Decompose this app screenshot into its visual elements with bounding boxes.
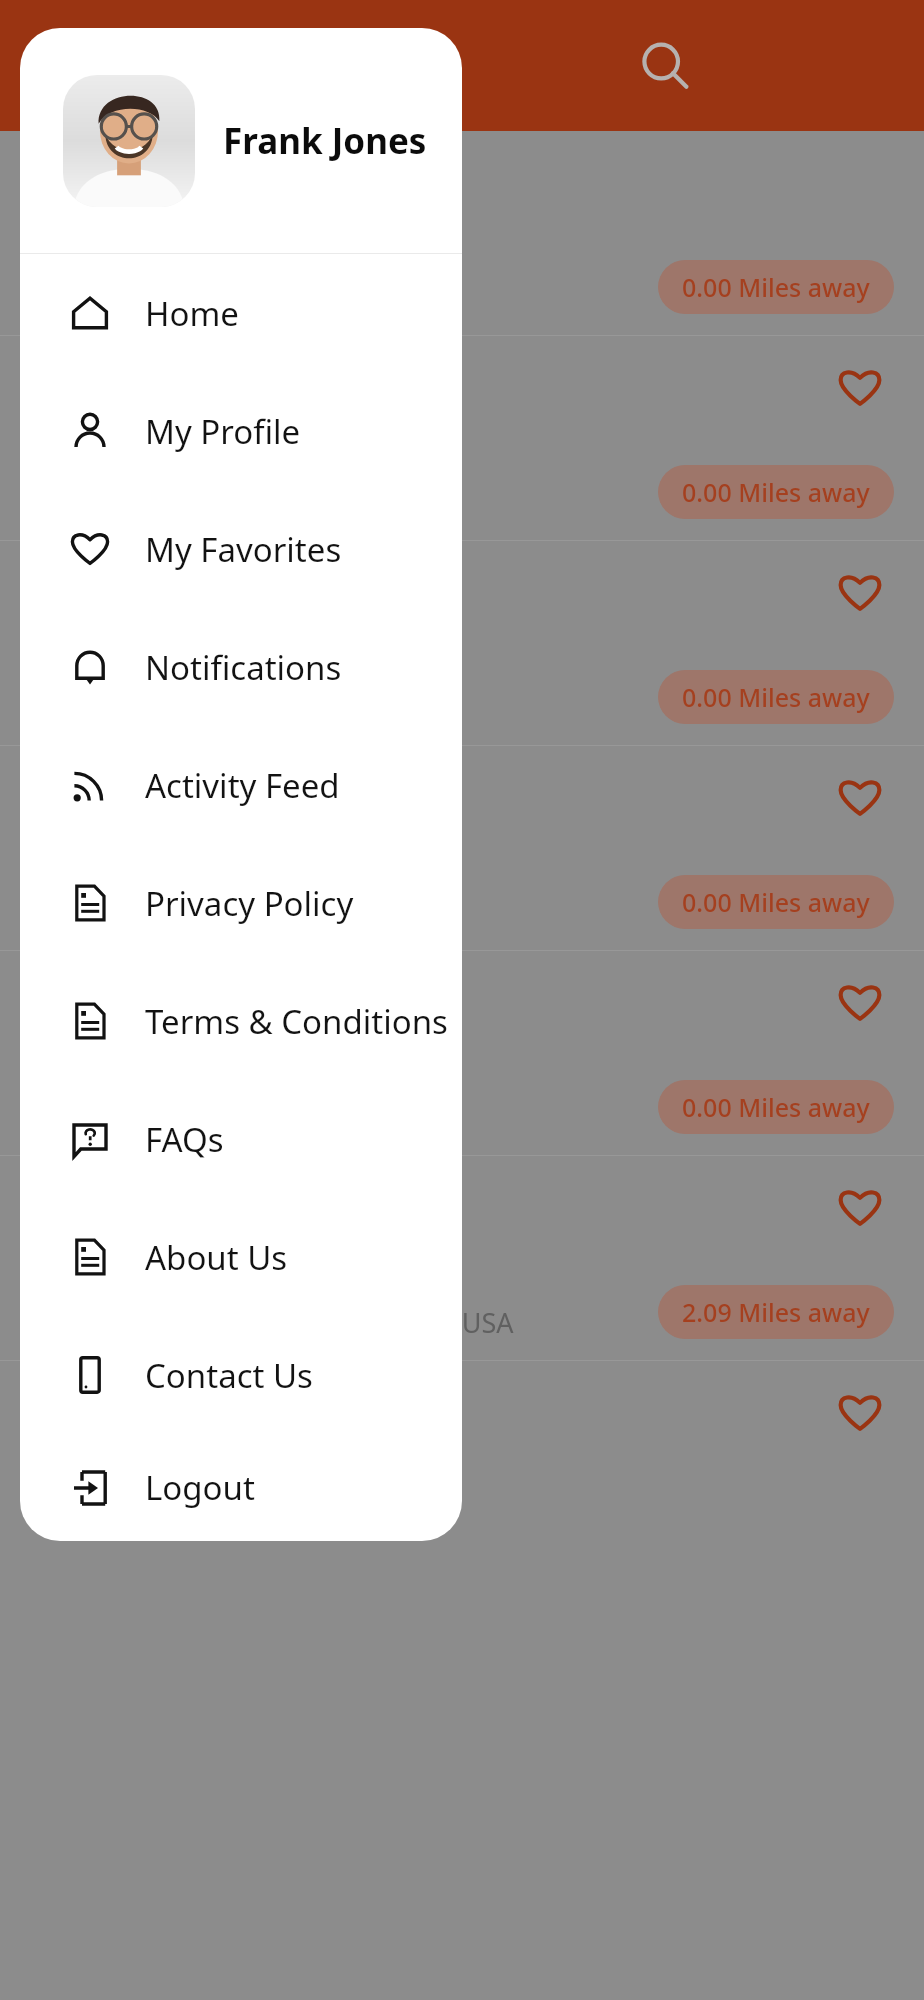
button[interactable]: Activity Feed xyxy=(20,726,462,844)
button[interactable]: Notifications xyxy=(20,608,462,726)
button[interactable]: My Favorites xyxy=(20,490,462,608)
button[interactable]: w xyxy=(0,951,924,1156)
staticText: 0.00 Miles away xyxy=(682,680,870,714)
button[interactable]: Terms & Conditions xyxy=(20,962,462,1080)
staticText: 0.00 Miles away xyxy=(682,270,870,304)
button[interactable]: Privacy Policy xyxy=(20,844,462,962)
staticText: My Profile xyxy=(145,409,301,454)
staticText: Notifications xyxy=(145,645,342,690)
staticText: Contact Us xyxy=(145,1353,313,1398)
button[interactable]: About Us xyxy=(20,1198,462,1316)
button[interactable]: w xyxy=(0,336,924,541)
staticText: Terms & Conditions xyxy=(145,999,448,1044)
button[interactable]: Search xyxy=(636,38,692,94)
staticText: Privacy Policy xyxy=(145,881,354,926)
staticText: i, FL, USA xyxy=(398,1304,514,1341)
staticText: 0.00 Miles away xyxy=(682,475,870,509)
button[interactable]: ey xyxy=(0,1156,924,1361)
button[interactable]: w xyxy=(0,541,924,746)
button[interactable]: Frank Jones xyxy=(20,28,462,253)
staticText: 2.09 Miles away xyxy=(682,1295,870,1329)
button[interactable]: My Profile xyxy=(20,372,462,490)
button[interactable]: Logout xyxy=(20,1434,462,1541)
staticText: w xyxy=(420,231,443,269)
button[interactable]: w xyxy=(0,131,924,336)
staticText: Home xyxy=(145,291,239,336)
staticText: FAQs xyxy=(145,1117,224,1162)
button[interactable]: Home xyxy=(20,254,462,372)
staticText: About Us xyxy=(145,1235,288,1280)
staticText: Frank Jones xyxy=(223,117,427,165)
staticText: Activity Feed xyxy=(145,763,340,808)
staticText: My Favorites xyxy=(145,527,342,572)
staticText: 0.00 Miles away xyxy=(682,885,870,919)
button[interactable]: Contact Us xyxy=(20,1316,462,1434)
staticText: Logout xyxy=(145,1465,255,1510)
staticText: 0.00 Miles away xyxy=(682,1090,870,1124)
button[interactable]: ash xyxy=(0,746,924,951)
button[interactable]: FAQs xyxy=(20,1080,462,1198)
